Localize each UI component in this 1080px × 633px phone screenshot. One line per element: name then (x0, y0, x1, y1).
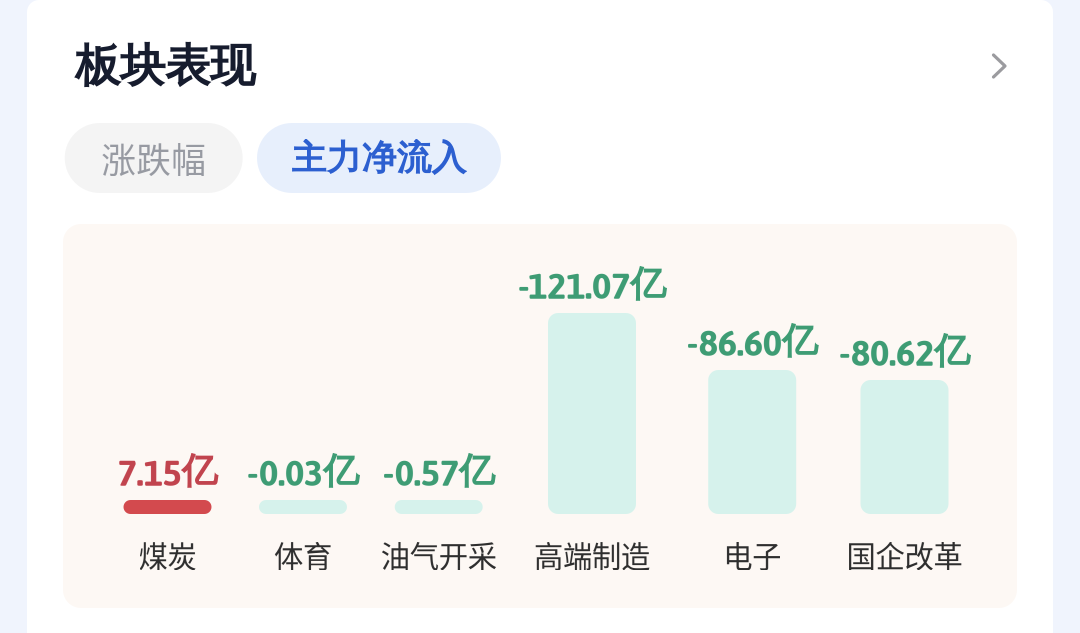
staticText: 涨跌幅 (101, 133, 206, 183)
staticText: -0.57亿 (383, 448, 495, 494)
staticText: 主力净流入 (291, 136, 466, 180)
staticText: 油气开采 (381, 533, 497, 576)
staticText: 电子 (723, 533, 781, 576)
staticText: 体育 (274, 533, 332, 576)
staticText: -0.03亿 (247, 448, 359, 494)
staticText: -86.60亿 (687, 318, 818, 364)
button[interactable]: 主力净流入 (257, 123, 501, 193)
staticText: -80.62亿 (839, 328, 970, 374)
button[interactable]: 板块表现 (75, 31, 1023, 101)
staticText: 高端制造 (534, 533, 650, 576)
staticText: 国企改革 (846, 533, 962, 576)
button[interactable]: 涨跌幅 (65, 123, 243, 193)
staticText: 7.15亿 (117, 448, 217, 494)
staticText: -121.07亿 (518, 261, 666, 307)
staticText: 煤炭 (138, 533, 196, 576)
staticText: 板块表现 (75, 37, 255, 94)
